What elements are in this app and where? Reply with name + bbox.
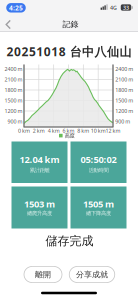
- staticText: 4G: [110, 4, 117, 11]
- staticText: 1503 m: [24, 198, 55, 210]
- staticText: 儲存完成: [45, 234, 93, 248]
- staticText: 1800 m: [115, 86, 133, 94]
- staticText: 12.04 km: [19, 153, 59, 165]
- staticText: 分享成就: [76, 270, 108, 279]
- staticText: 4 km: [48, 127, 60, 134]
- staticText: 05:50:02: [80, 153, 116, 165]
- staticText: 4:25: [9, 3, 23, 12]
- staticText: 900 m: [115, 118, 130, 125]
- staticText: 高度: [64, 132, 74, 139]
- button[interactable]: 離開: [24, 266, 62, 282]
- staticText: 累計距離: [29, 167, 49, 174]
- staticText: 總下降高度: [86, 210, 111, 217]
- staticText: 12 km: [105, 127, 120, 134]
- staticText: 10 km: [91, 127, 106, 134]
- staticText: 2400 m: [4, 65, 22, 73]
- staticText: 20251018 台中八仙山: [7, 43, 131, 59]
- staticText: 2100 m: [115, 76, 133, 83]
- staticText: 1500 m: [4, 97, 22, 104]
- staticText: 900 m: [7, 118, 22, 125]
- staticText: 1500 m: [115, 97, 133, 104]
- button[interactable]: Back: [0, 0, 138, 300]
- staticText: 2100 m: [4, 76, 22, 83]
- staticText: 2 km: [33, 127, 45, 134]
- staticText: 6 km: [62, 127, 74, 134]
- staticText: 1200 m: [4, 107, 22, 115]
- staticText: 1800 m: [4, 86, 22, 94]
- staticText: 記錄: [62, 19, 78, 29]
- staticText: 2400 m: [115, 65, 133, 73]
- staticText: 總爬升高度: [27, 210, 52, 217]
- button[interactable]: 分享成就: [69, 266, 115, 282]
- staticText: 33: [123, 4, 129, 11]
- staticText: 離開: [35, 270, 51, 279]
- staticText: 1200 m: [115, 107, 133, 115]
- button[interactable]: 儲存完成: [45, 234, 93, 248]
- staticText: 活動時間: [88, 167, 108, 174]
- staticText: 0 km: [18, 127, 30, 134]
- staticText: 8 km: [77, 127, 89, 134]
- staticText: 1505 m: [83, 198, 114, 210]
